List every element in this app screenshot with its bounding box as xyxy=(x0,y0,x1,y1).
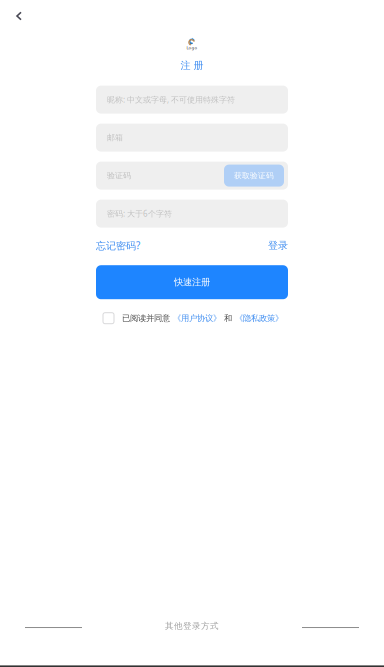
staticText: 快速注册 xyxy=(174,276,210,288)
button[interactable]: 获取验证码 xyxy=(224,165,284,187)
staticText: 忘记密码? xyxy=(96,239,140,252)
button[interactable]: Agree to terms xyxy=(101,310,116,326)
staticText: 验证码 xyxy=(107,171,131,181)
staticText: 《隐私政策》 xyxy=(235,313,283,323)
staticText: 登录 xyxy=(268,239,288,252)
staticText: Logo xyxy=(186,45,197,51)
staticText: 密码: 大于6个字符 xyxy=(107,208,172,219)
staticText: 昵称: 中文或字母, 不可使用特殊字符 xyxy=(107,94,235,105)
button[interactable]: 忘记密码? xyxy=(96,239,140,252)
button[interactable]: Back xyxy=(7,4,31,28)
button[interactable]: 快速注册 xyxy=(96,265,288,299)
staticText: 获取验证码 xyxy=(234,171,274,180)
button[interactable]: 《用户协议》 xyxy=(170,313,221,323)
staticText: 其他登录方式 xyxy=(165,621,219,631)
staticText: 邮箱 xyxy=(107,133,123,143)
staticText: 注 册 xyxy=(180,59,203,72)
staticText: 已阅读并同意 xyxy=(122,313,170,323)
button[interactable]: 登录 xyxy=(268,239,288,252)
staticText: 和 xyxy=(224,313,232,323)
button[interactable]: 《隐私政策》 xyxy=(232,313,283,323)
staticText: 《用户协议》 xyxy=(173,313,221,323)
